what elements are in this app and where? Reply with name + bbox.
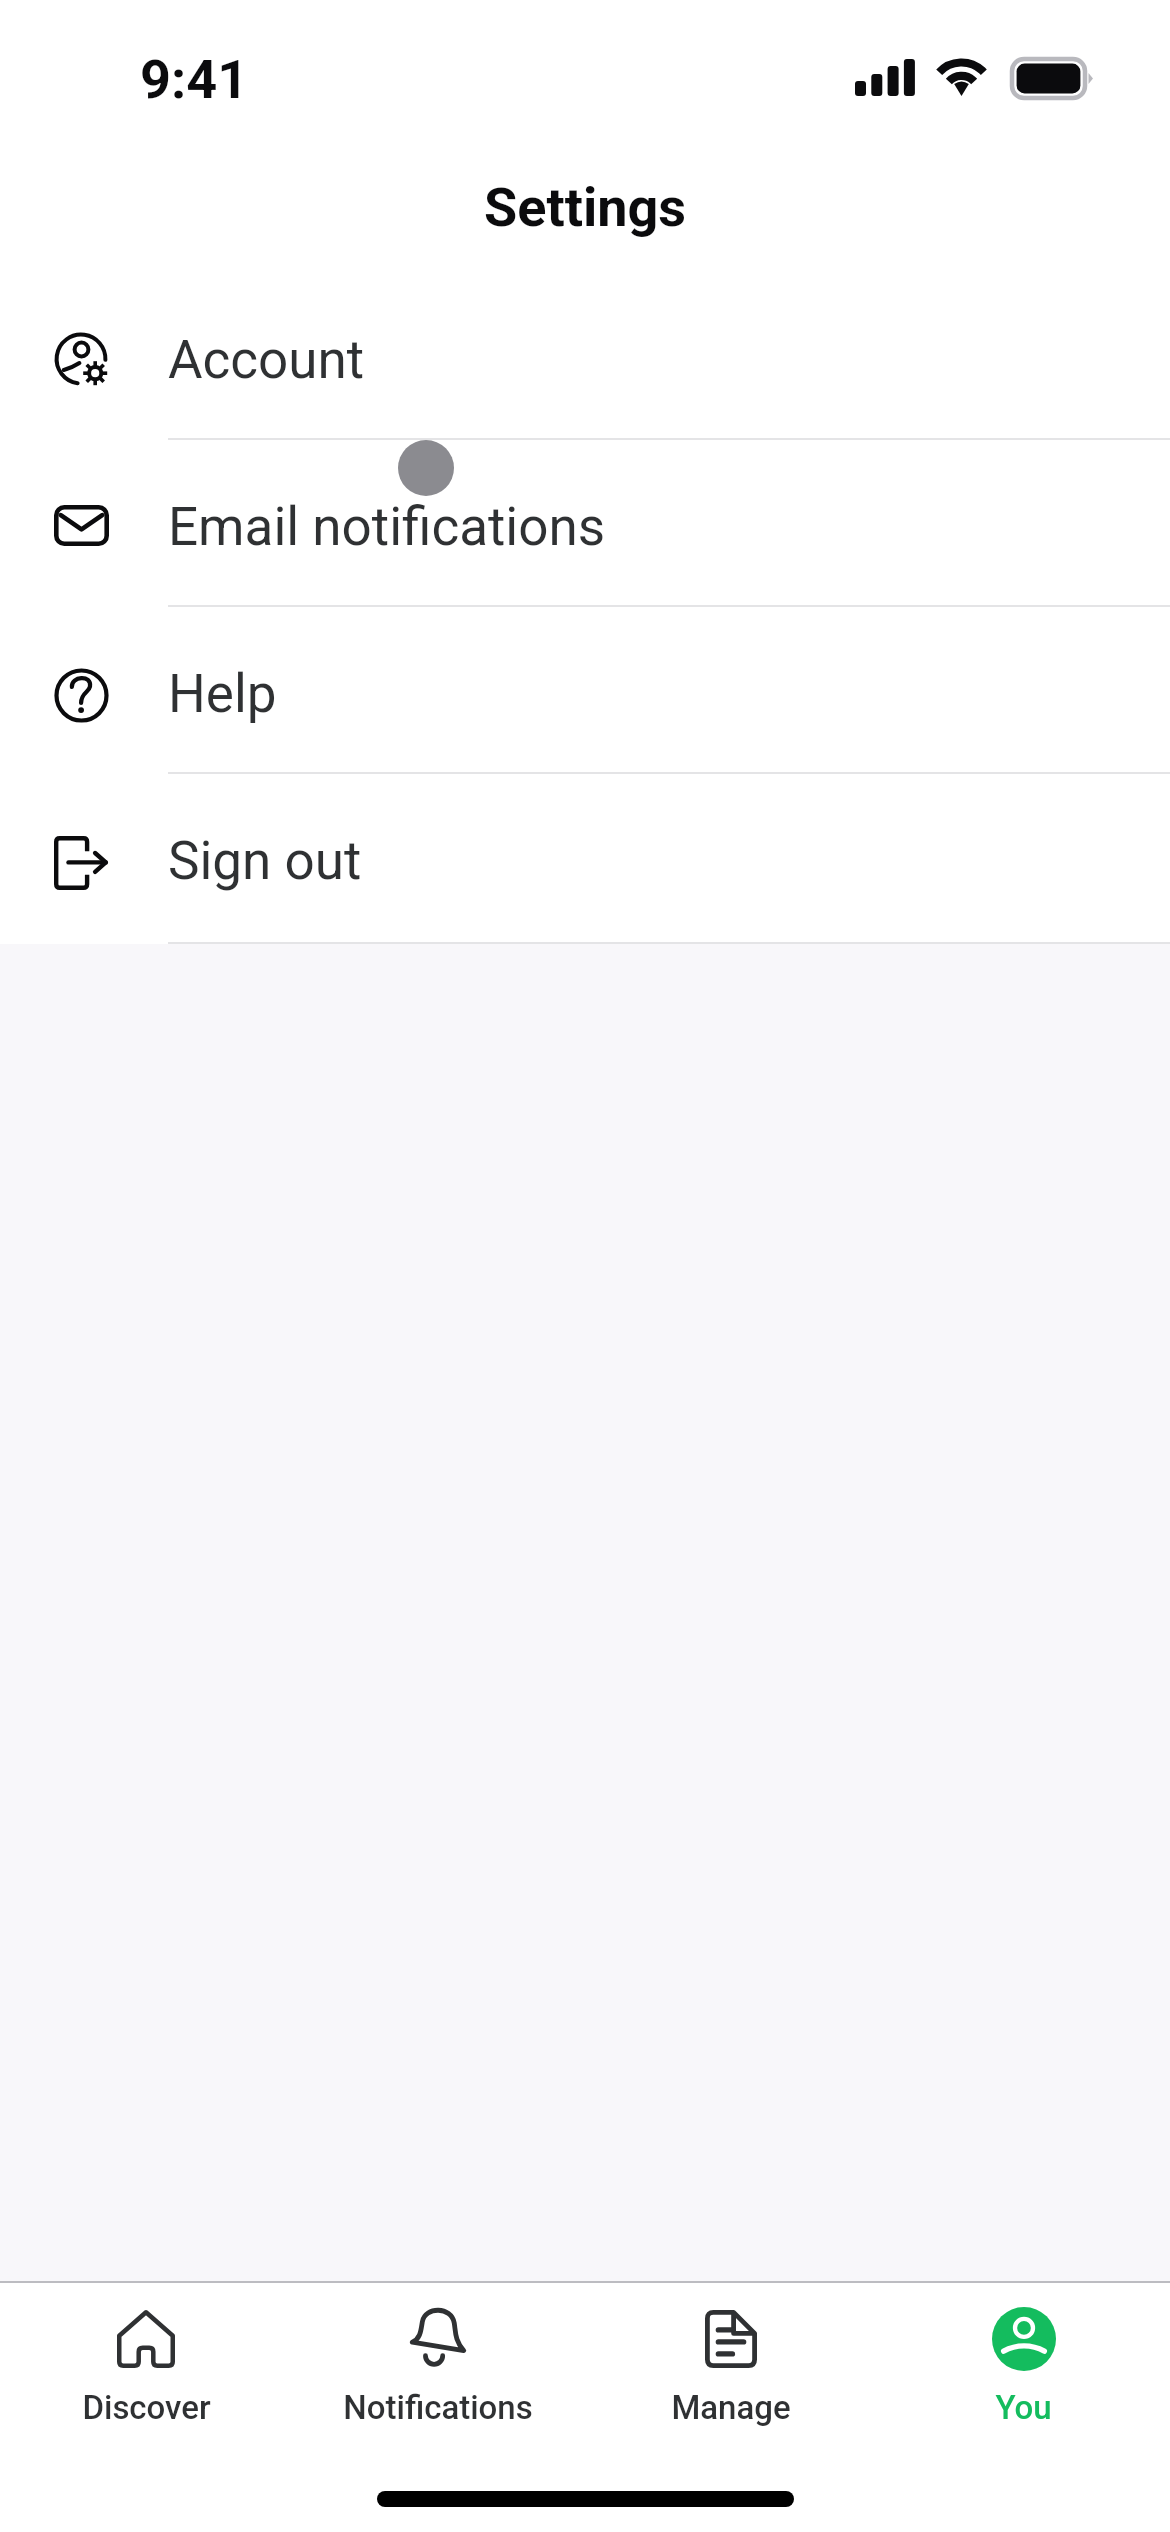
button[interactable]: Email notifications — [0, 440, 1170, 605]
staticText: Discover — [82, 2388, 211, 2427]
staticText: Notifications — [343, 2388, 533, 2427]
staticText: Account — [168, 329, 365, 391]
button[interactable]: Notifications — [292, 2283, 584, 2458]
button[interactable]: Manage — [584, 2283, 877, 2458]
staticText: Email notifications — [168, 496, 606, 558]
staticText: Manage — [671, 2388, 791, 2427]
button[interactable]: Discover — [0, 2283, 292, 2458]
staticText: Sign out — [168, 830, 362, 892]
button[interactable]: Sign out — [0, 774, 1170, 939]
button[interactable]: Help — [0, 607, 1170, 772]
staticText: 9:41 — [140, 48, 249, 111]
staticText: Help — [168, 663, 277, 725]
button[interactable]: You — [877, 2283, 1170, 2458]
staticText: Settings — [484, 176, 687, 239]
staticText: You — [995, 2388, 1052, 2427]
button[interactable]: Account — [0, 273, 1170, 438]
